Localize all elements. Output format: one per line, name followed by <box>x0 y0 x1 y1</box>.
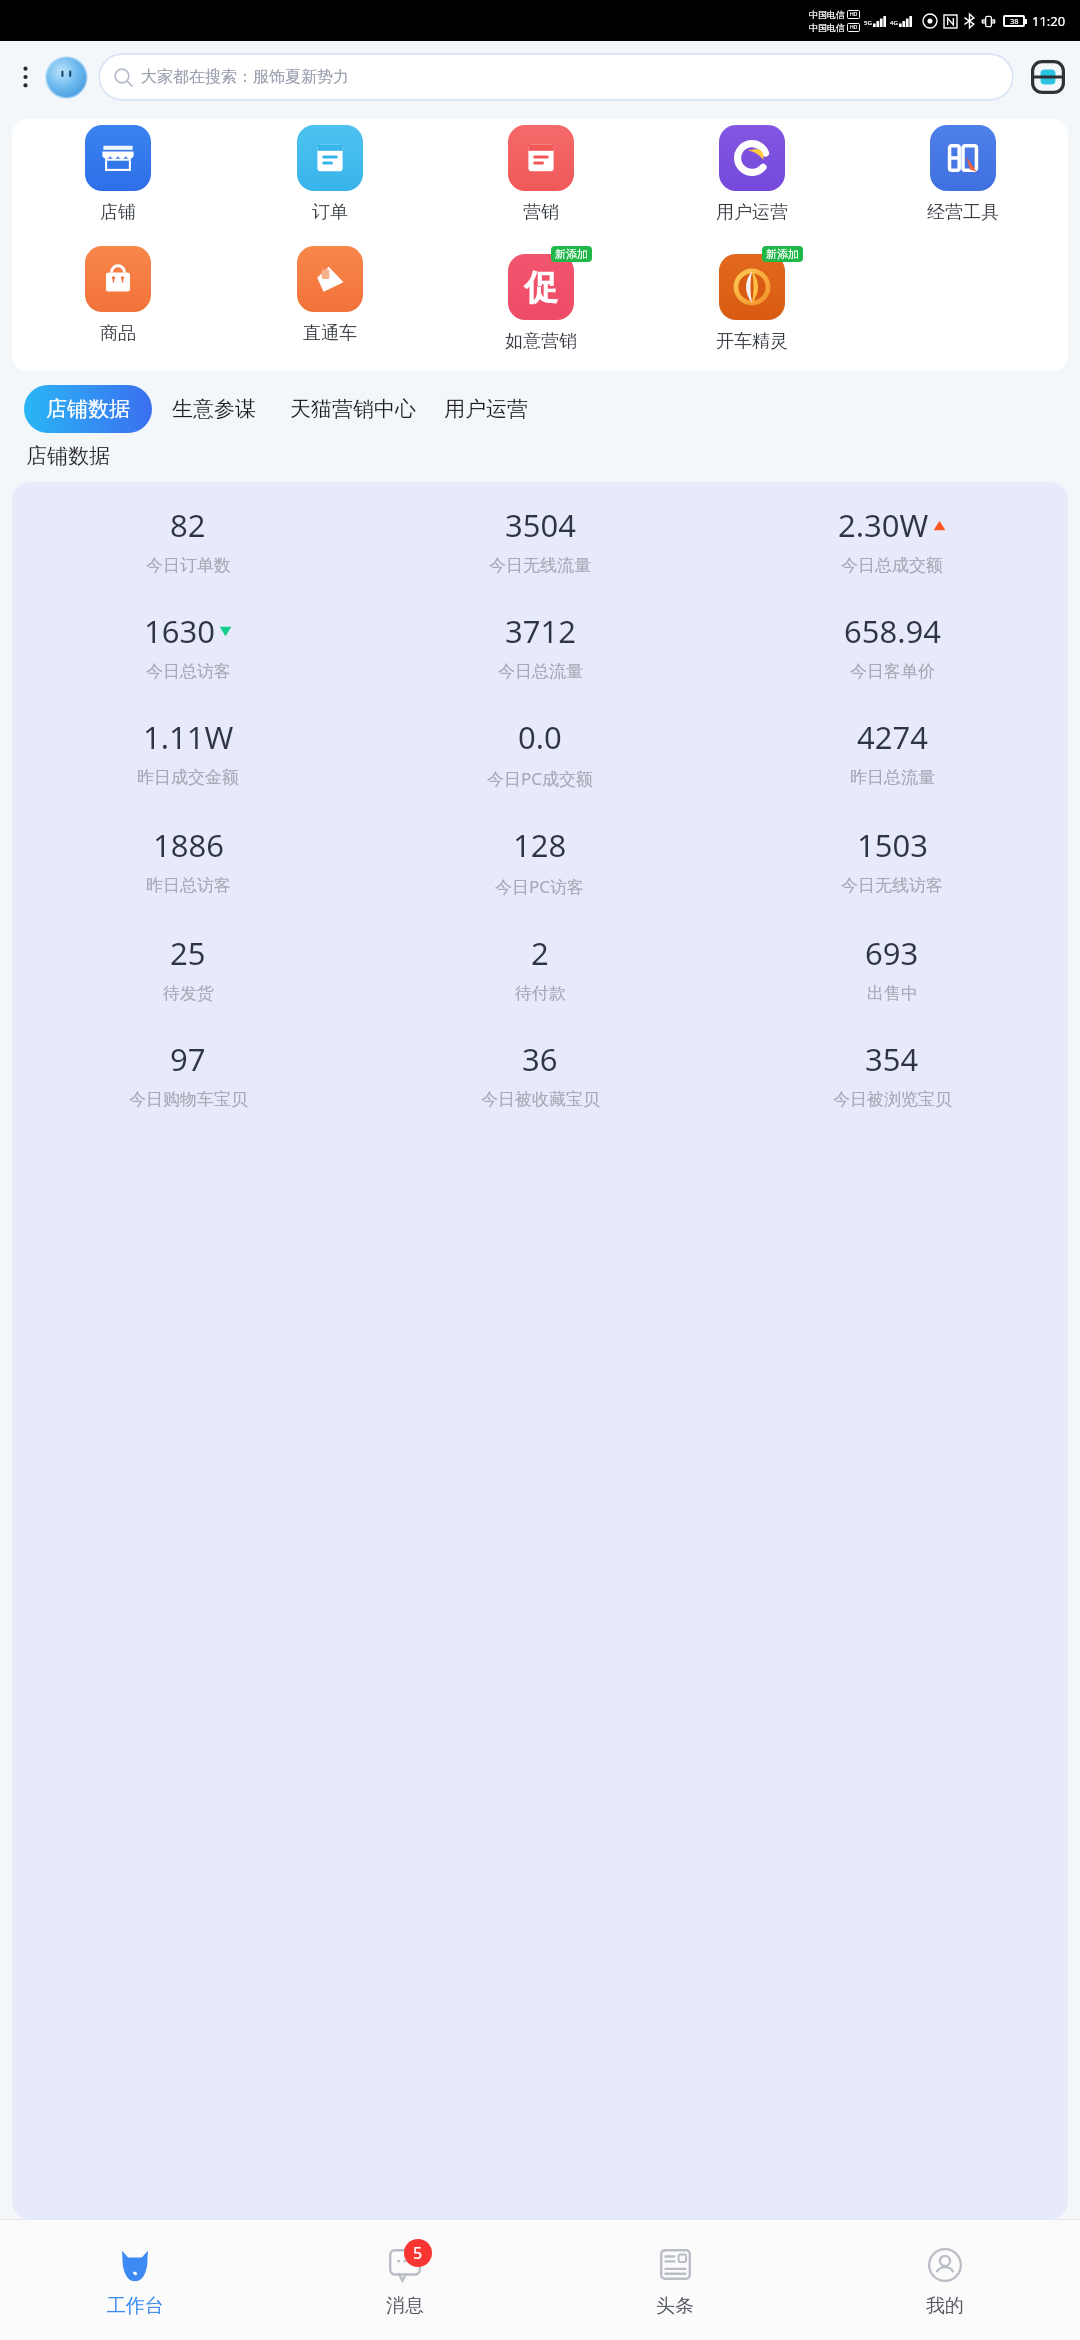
button[interactable]: 1503 <box>716 824 1068 896</box>
button[interactable]: 天猫营销中心 <box>276 385 430 433</box>
button[interactable]: 3712 <box>364 610 716 682</box>
staticText: 头条 <box>656 2294 694 2318</box>
button[interactable]: 头条 <box>540 2220 810 2340</box>
staticText: HD <box>850 11 858 18</box>
staticText: 97 <box>170 1038 206 1080</box>
button[interactable]: 36 <box>364 1038 716 1110</box>
staticText: 新添加 <box>555 247 588 261</box>
staticText: 128 <box>513 824 567 866</box>
staticText: 693 <box>865 932 919 974</box>
staticText: 直通车 <box>303 322 357 345</box>
button[interactable]: 生意参谋 <box>152 385 276 433</box>
button[interactable]: 354 <box>716 1038 1068 1110</box>
button[interactable]: 2 <box>364 932 716 1004</box>
staticText: 今日总访客 <box>146 661 231 682</box>
staticText: 1503 <box>857 824 928 866</box>
button[interactable]: 订单 <box>224 123 435 226</box>
staticText: 今日被收藏宝贝 <box>481 1089 600 1110</box>
staticText: 生意参谋 <box>172 396 256 422</box>
staticText: 0.0 <box>518 716 562 758</box>
button[interactable]: 商品 <box>12 244 224 347</box>
staticText: 82 <box>170 504 206 546</box>
staticText: 5G <box>864 19 872 27</box>
button[interactable]: 工作台 <box>0 2220 270 2340</box>
button[interactable]: 店铺数据 <box>24 385 152 433</box>
staticText: 订单 <box>312 201 348 224</box>
staticText: 待付款 <box>515 983 566 1004</box>
staticText: 2.30W <box>838 504 929 546</box>
staticText: 658.94 <box>844 610 941 652</box>
staticText: 店铺数据 <box>46 396 130 422</box>
button[interactable]: 促 <box>435 244 646 355</box>
staticText: 我的 <box>926 2294 964 2318</box>
staticText: 昨日成交金额 <box>137 767 239 788</box>
staticText: 新添加 <box>766 247 799 261</box>
staticText: 今日订单数 <box>146 555 231 576</box>
staticText: 1.11W <box>143 716 234 758</box>
staticText: 25 <box>170 932 206 974</box>
button[interactable]: 直通车 <box>224 244 435 347</box>
button[interactable]: Assistant <box>44 55 88 99</box>
button[interactable]: 3504 <box>364 504 716 576</box>
staticText: 4274 <box>857 716 928 758</box>
staticText: 今日总成交额 <box>841 555 943 576</box>
staticText: 店铺数据 <box>26 443 110 469</box>
button[interactable]: 大家都在搜索：服饰夏新势力 <box>98 53 1014 101</box>
staticText: 1886 <box>153 824 224 866</box>
staticText: 354 <box>865 1038 919 1080</box>
button[interactable]: 1630 <box>12 610 364 682</box>
staticText: 出售中 <box>867 983 918 1004</box>
staticText: 经营工具 <box>927 201 999 224</box>
button[interactable]: 用户运营 <box>430 385 528 433</box>
staticText: 中国电信 <box>809 9 845 20</box>
staticText: 今日PC成交额 <box>487 767 594 790</box>
button[interactable]: 营销 <box>435 123 646 226</box>
staticText: 11:20 <box>1032 12 1066 30</box>
button[interactable]: 0.0 <box>364 716 716 790</box>
staticText: 今日无线流量 <box>489 555 591 576</box>
button[interactable]: 经营工具 <box>857 123 1068 226</box>
button[interactable]: 用户运营 <box>646 123 857 226</box>
staticText: 促 <box>524 266 558 309</box>
staticText: 消息 <box>386 2294 424 2318</box>
button[interactable]: 新添加 <box>646 244 857 355</box>
staticText: HD <box>850 24 858 31</box>
button[interactable]: 97 <box>12 1038 364 1110</box>
staticText: 3504 <box>505 504 576 546</box>
button[interactable]: 4274 <box>716 716 1068 788</box>
button[interactable]: 1886 <box>12 824 364 896</box>
staticText: 36 <box>522 1038 558 1080</box>
staticText: 1630 <box>144 610 215 652</box>
button[interactable]: More options <box>10 62 40 92</box>
staticText: 营销 <box>523 201 559 224</box>
staticText: 4G <box>890 19 898 27</box>
staticText: 中国电信 <box>809 22 845 33</box>
staticText: 商品 <box>100 322 136 345</box>
staticText: 今日PC访客 <box>495 875 585 898</box>
staticText: 如意营销 <box>505 330 577 353</box>
staticText: 用户运营 <box>716 201 788 224</box>
staticText: 2 <box>531 932 549 974</box>
staticText: 昨日总访客 <box>146 875 231 896</box>
button[interactable]: Scan QR code <box>1026 55 1070 99</box>
button[interactable]: 25 <box>12 932 364 1004</box>
button[interactable]: 1.11W <box>12 716 364 788</box>
staticText: 38 <box>1010 16 1019 26</box>
staticText: 昨日总流量 <box>850 767 935 788</box>
button[interactable]: 5 <box>270 2220 540 2340</box>
staticText: 工作台 <box>107 2294 164 2318</box>
button[interactable]: 693 <box>716 932 1068 1004</box>
staticText: 5 <box>413 2242 423 2264</box>
button[interactable]: 128 <box>364 824 716 898</box>
staticText: 天猫营销中心 <box>290 396 416 422</box>
button[interactable]: 店铺 <box>12 123 224 226</box>
staticText: 3712 <box>505 610 576 652</box>
button[interactable]: 658.94 <box>716 610 1068 682</box>
staticText: 今日购物车宝贝 <box>129 1089 248 1110</box>
button[interactable]: 我的 <box>810 2220 1080 2340</box>
staticText: 用户运营 <box>444 396 528 422</box>
button[interactable]: 82 <box>12 504 364 576</box>
staticText: 今日总流量 <box>498 661 583 682</box>
staticText: 开车精灵 <box>716 330 788 353</box>
button[interactable]: 2.30W <box>716 504 1068 576</box>
